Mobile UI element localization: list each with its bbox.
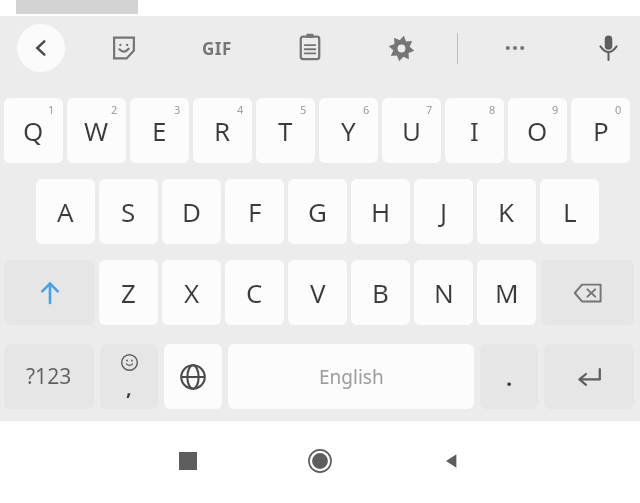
button[interactable]: Recent apps <box>168 441 208 481</box>
staticText: U <box>402 113 422 148</box>
staticText: W <box>84 113 109 148</box>
staticText: C <box>246 275 263 310</box>
staticText: D <box>182 194 201 229</box>
staticText: . <box>506 362 513 392</box>
staticText: O <box>527 113 548 148</box>
staticText: X <box>184 275 200 310</box>
button[interactable]: English <box>228 344 474 409</box>
button[interactable]: K <box>477 179 536 244</box>
staticText: 5 <box>300 102 307 117</box>
staticText: V <box>310 275 326 310</box>
button[interactable]: . <box>480 344 538 409</box>
staticText: R <box>214 113 231 148</box>
button[interactable]: Home <box>300 441 340 481</box>
button[interactable]: P <box>571 98 630 163</box>
staticText: J <box>440 194 448 229</box>
staticText: G <box>308 194 327 229</box>
button[interactable]: Settings <box>377 24 425 72</box>
button[interactable]: More options <box>491 24 539 72</box>
button[interactable]: Emoji and comma <box>100 344 158 409</box>
staticText: 9 <box>552 102 559 117</box>
staticText: 2 <box>111 102 118 117</box>
button[interactable]: Back <box>432 441 472 481</box>
staticText: B <box>372 275 389 310</box>
button[interactable]: Y <box>319 98 378 163</box>
staticText: ?123 <box>26 362 72 391</box>
staticText: 4 <box>237 102 244 117</box>
button[interactable]: T <box>256 98 315 163</box>
staticText: 1 <box>48 102 55 117</box>
button[interactable]: Stickers <box>100 24 148 72</box>
button[interactable]: Back <box>17 24 65 72</box>
button[interactable]: ?123 <box>4 344 94 409</box>
staticText: F <box>248 194 262 229</box>
staticText: Z <box>121 275 136 310</box>
staticText: 0 <box>615 102 622 117</box>
button[interactable]: Z <box>99 260 158 325</box>
button[interactable]: L <box>540 179 599 244</box>
button[interactable]: D <box>162 179 221 244</box>
button[interactable]: B <box>351 260 410 325</box>
button[interactable]: V <box>288 260 347 325</box>
staticText: GIF <box>202 37 232 60</box>
staticText: Q <box>23 113 44 148</box>
staticText: 8 <box>489 102 496 117</box>
staticText: H <box>371 194 391 229</box>
button[interactable]: I <box>445 98 504 163</box>
staticText: 3 <box>174 102 181 117</box>
button[interactable]: Clipboard <box>286 23 334 71</box>
staticText: Y <box>341 113 356 148</box>
button[interactable]: N <box>414 260 473 325</box>
staticText: E <box>152 113 167 148</box>
staticText: , <box>126 374 132 401</box>
button[interactable]: U <box>382 98 441 163</box>
button[interactable]: W <box>67 98 126 163</box>
button[interactable]: C <box>225 260 284 325</box>
staticText: P <box>593 113 609 148</box>
staticText: A <box>57 194 74 229</box>
staticText: N <box>434 275 454 310</box>
button[interactable]: O <box>508 98 567 163</box>
button[interactable]: Shift <box>4 260 95 325</box>
button[interactable]: J <box>414 179 473 244</box>
button[interactable]: Change language <box>164 344 222 409</box>
button[interactable]: Q <box>4 98 63 163</box>
staticText: 7 <box>426 102 433 117</box>
staticText: L <box>563 194 577 229</box>
button[interactable]: M <box>477 260 536 325</box>
staticText: English <box>319 364 384 390</box>
staticText: I <box>470 113 479 148</box>
staticText: M <box>495 275 519 310</box>
button[interactable]: S <box>99 179 158 244</box>
staticText: K <box>498 194 515 229</box>
button[interactable]: G <box>288 179 347 244</box>
staticText: T <box>278 113 293 148</box>
button[interactable]: E <box>130 98 189 163</box>
button[interactable]: F <box>225 179 284 244</box>
button[interactable]: GIF <box>193 24 241 72</box>
staticText: S <box>121 194 136 229</box>
button[interactable]: Voice input <box>584 23 632 71</box>
button[interactable]: Backspace <box>541 260 634 325</box>
button[interactable]: X <box>162 260 221 325</box>
staticText: 6 <box>363 102 370 117</box>
button[interactable]: A <box>36 179 95 244</box>
button[interactable]: R <box>193 98 252 163</box>
button[interactable]: H <box>351 179 410 244</box>
button[interactable]: Enter <box>544 344 634 409</box>
